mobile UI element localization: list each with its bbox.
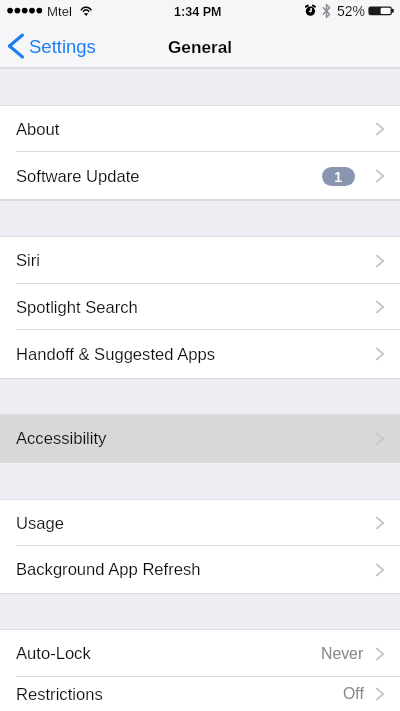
staticText: 1 [334,168,343,185]
staticText: 1:34 PM [174,5,222,19]
button[interactable]: Accessibility [0,415,400,462]
staticText: Never [321,645,364,663]
button[interactable]: Restrictions [0,677,400,711]
button[interactable]: Settings [0,24,400,68]
staticText: Auto-Lock [16,644,91,663]
staticText: 52% [337,3,366,19]
button[interactable]: About [0,106,400,152]
staticText: Usage [16,514,64,533]
staticText: Handoff & Suggested Apps [16,345,215,364]
staticText: General [168,37,233,56]
staticText: Mtel [47,4,72,19]
staticText: Restrictions [16,685,103,704]
button[interactable]: Auto-Lock [0,630,400,677]
button[interactable]: Siri [0,237,400,284]
staticText: About [16,120,60,139]
button[interactable]: Handoff & Suggested Apps [0,330,400,378]
staticText: Accessibility [16,429,107,448]
button[interactable]: Spotlight Search [0,284,400,330]
staticText: Background App Refresh [16,560,201,579]
button[interactable]: Background App Refresh [0,546,400,593]
button[interactable]: Software Update [0,152,400,200]
staticText: Settings [29,36,96,57]
button[interactable]: Usage [0,500,400,546]
staticText: Siri [16,251,40,270]
staticText: Spotlight Search [16,298,138,317]
staticText: Software Update [16,167,140,186]
staticText: Off [343,685,364,703]
